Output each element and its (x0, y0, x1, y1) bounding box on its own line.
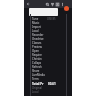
staticText: Collaps (32, 61, 42, 65)
staticText: Open (32, 49, 39, 53)
button[interactable]: More options (60, 0, 65, 8)
staticText: Local (32, 90, 39, 94)
button[interactable] (29, 8, 58, 16)
button[interactable]: Term (32, 77, 56, 81)
staticText: Term (32, 77, 39, 81)
staticText: Christin (32, 57, 42, 61)
button[interactable]: Record (64, 6, 69, 11)
button[interactable]: Grid view (55, 0, 60, 8)
button[interactable]: Open (32, 49, 56, 53)
button[interactable]: Refresh (32, 65, 56, 69)
staticText: US$ 85 (47, 17, 56, 21)
staticText: Require (32, 53, 42, 57)
button[interactable]: Search (45, 0, 50, 8)
button[interactable]: Back (25, 0, 31, 8)
button[interactable]: Import (32, 25, 56, 29)
staticText: Onedrive (32, 37, 44, 41)
button[interactable]: Require (32, 53, 56, 57)
button[interactable]: Christin (32, 57, 56, 61)
staticText: Import (32, 25, 41, 29)
staticText: Refresh (32, 65, 42, 69)
button[interactable]: Preview (32, 45, 56, 49)
button[interactable]: Local (32, 29, 56, 33)
button[interactable]: Collaps (32, 61, 56, 65)
staticText: Music (32, 21, 40, 25)
staticText: Preview (32, 45, 42, 49)
staticText: $0.61 (48, 82, 56, 86)
button[interactable]: LiveMedia (32, 73, 56, 77)
button[interactable]: Classes (32, 41, 56, 45)
button[interactable]: Recorder (32, 33, 56, 37)
button[interactable]: Sort (50, 0, 55, 8)
staticText: Share (32, 69, 40, 73)
staticText: Local (32, 29, 39, 33)
button[interactable]: Onedrive (32, 37, 56, 41)
staticText: LiveMedia (32, 73, 45, 77)
staticText: Classes (32, 41, 42, 45)
staticText: Recorder (32, 33, 44, 37)
button[interactable]: Music (32, 21, 56, 25)
button[interactable]: Total Pr (32, 82, 56, 86)
button[interactable]: Share (32, 69, 56, 73)
staticText: Total Pr (32, 82, 44, 86)
staticText: Original (32, 86, 42, 90)
button[interactable]: Tune (32, 17, 56, 21)
staticText: Tune (32, 17, 39, 21)
